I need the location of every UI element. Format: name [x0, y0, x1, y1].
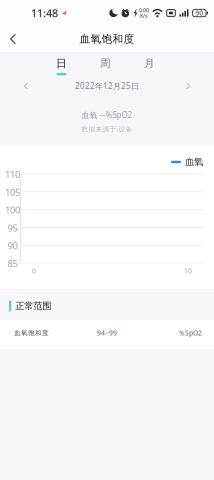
button[interactable]: Back — [0, 26, 26, 52]
staticText: 110 — [5, 168, 20, 181]
staticText: 血氧饱和度 — [14, 329, 49, 337]
staticText: 94~99 — [97, 329, 117, 337]
staticText: 月 — [144, 57, 155, 70]
staticText: 85 — [7, 257, 17, 270]
button[interactable]: Next day — [176, 78, 200, 94]
staticText: 0.00 — [139, 7, 149, 14]
staticText: 11:48 — [31, 6, 58, 20]
button[interactable]: 月 — [127, 58, 171, 78]
button[interactable]: 周 — [83, 58, 127, 78]
staticText: 周 — [100, 57, 111, 70]
staticText: K/s — [140, 12, 148, 19]
staticText: 0 — [32, 267, 36, 275]
staticText: %SpO2 — [179, 329, 202, 337]
staticText: 日 — [56, 57, 67, 70]
staticText: 正常范围 — [15, 300, 51, 312]
button[interactable]: Previous day — [14, 78, 38, 94]
staticText: 血氧 --%SpO2 — [81, 110, 132, 120]
staticText: 100 — [5, 204, 20, 216]
staticText: 90 — [195, 9, 203, 17]
staticText: 90 — [7, 239, 17, 252]
button[interactable]: 日 — [39, 58, 83, 78]
staticText: 血氧饱和度 — [79, 32, 134, 45]
staticText: 105 — [5, 186, 20, 198]
staticText: 10 — [184, 267, 192, 275]
staticText: 数据来源于-设备 — [81, 125, 132, 133]
staticText: 血氧 — [185, 156, 203, 168]
staticText: 95 — [7, 222, 17, 234]
staticText: 2022年12月25日 — [75, 81, 139, 91]
